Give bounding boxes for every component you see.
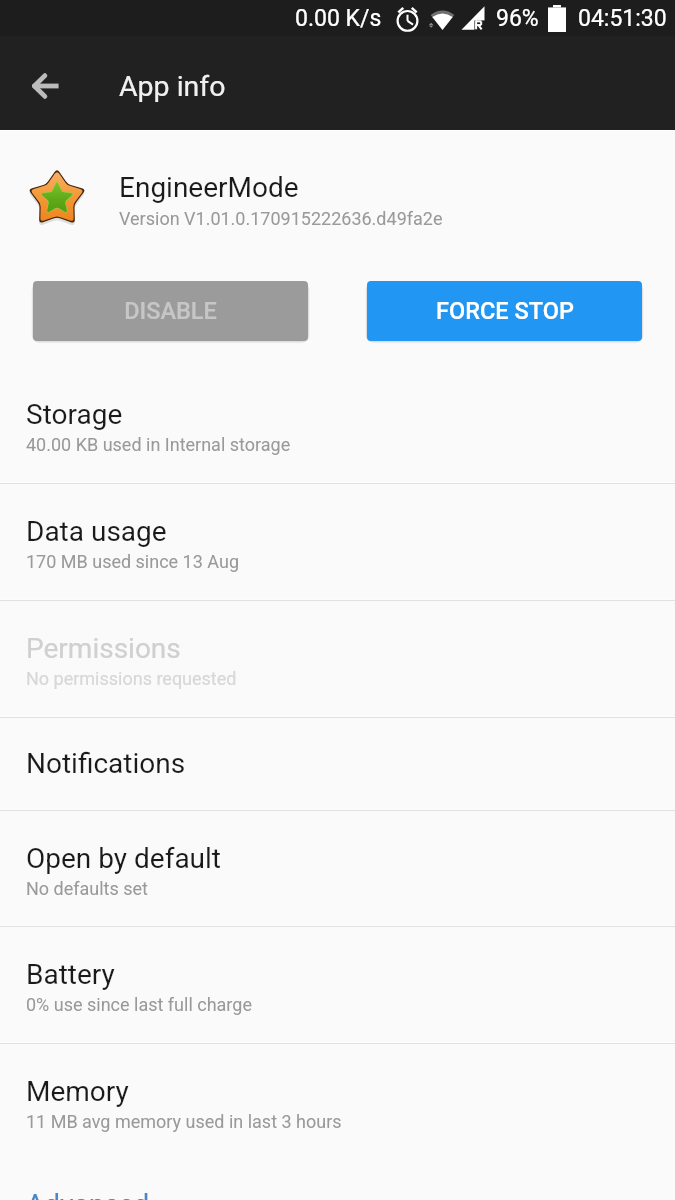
staticText: Data usage — [26, 515, 167, 548]
staticText: 170 MB used since 13 Aug — [26, 551, 239, 572]
button[interactable]: Data usage — [0, 484, 675, 599]
staticText: FORCE STOP — [436, 297, 574, 325]
staticText: No defaults set — [26, 878, 148, 899]
staticText: 40.00 KB used in Internal storage — [26, 434, 291, 455]
staticText: 04:51:30 — [578, 5, 667, 32]
staticText: Open by default — [26, 842, 222, 875]
staticText: App info — [119, 70, 226, 103]
button[interactable]: Permissions — [0, 601, 675, 716]
button[interactable]: Advanced — [0, 1159, 675, 1200]
staticText: Version V1.01.0.170915222636.d49fa2e — [119, 208, 443, 229]
staticText: Storage — [26, 398, 123, 431]
button[interactable]: Storage — [0, 367, 675, 482]
button[interactable]: DISABLE — [33, 281, 308, 345]
staticText: 0% use since last full charge — [26, 994, 252, 1015]
staticText: Advanced — [26, 1188, 150, 1200]
button[interactable]: Battery — [0, 927, 675, 1042]
button[interactable]: EngineerMode — [0, 131, 675, 281]
staticText: Battery — [26, 958, 115, 991]
button[interactable]: Notifications — [0, 718, 675, 809]
staticText: 96% — [496, 5, 539, 32]
button[interactable]: FORCE STOP — [367, 281, 642, 345]
button[interactable]: Navigate up — [16, 56, 76, 116]
staticText: No permissions requested — [26, 668, 237, 689]
staticText: 11 MB avg memory used in last 3 hours — [26, 1111, 342, 1132]
staticText: 0.00 K/s — [295, 5, 382, 32]
staticText: Memory — [26, 1075, 129, 1108]
button[interactable]: Memory — [0, 1044, 675, 1159]
staticText: Notifications — [26, 747, 186, 780]
button[interactable]: Open by default — [0, 811, 675, 925]
staticText: Permissions — [26, 632, 181, 665]
staticText: DISABLE — [124, 297, 217, 325]
staticText: EngineerMode — [119, 171, 299, 204]
